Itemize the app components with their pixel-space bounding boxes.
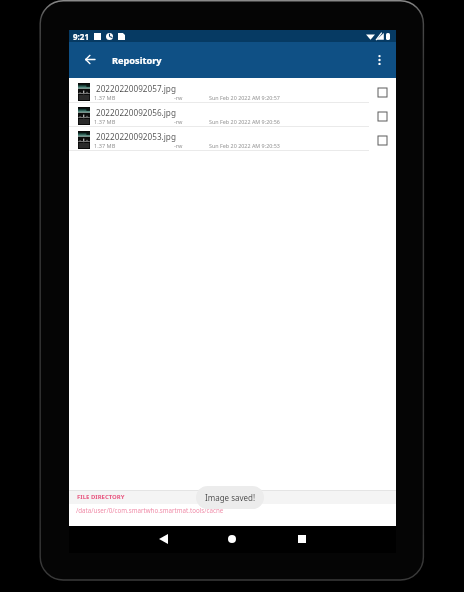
button[interactable]: 20220220092056.jpg (69, 102, 396, 126)
button[interactable]: Home (219, 526, 245, 552)
staticText: 1.37 MB (94, 118, 116, 126)
button[interactable]: Select file (373, 131, 391, 149)
button[interactable]: Recent apps (289, 526, 315, 552)
staticText: -rw (174, 118, 183, 126)
button[interactable]: 20220220092057.jpg (69, 78, 396, 102)
staticText: 20220220092057.jpg (96, 83, 176, 94)
staticText: 1.37 MB (94, 94, 116, 102)
button[interactable]: Back (76, 46, 103, 73)
staticText: 1.37 MB (94, 142, 116, 150)
button[interactable]: More options (366, 46, 393, 73)
staticText: 9:21 (73, 31, 89, 42)
button[interactable]: 20220220092053.jpg (69, 126, 396, 150)
staticText: Image saved! (205, 492, 256, 503)
button[interactable]: Select file (373, 83, 391, 101)
button[interactable]: Back (150, 526, 176, 552)
staticText: Sun Feb 20 2022 AM 9:20:53 (209, 142, 280, 149)
staticText: FILE DIRECTORY (77, 493, 125, 501)
staticText: Sun Feb 20 2022 AM 9:20:56 (209, 118, 280, 125)
staticText: -rw (174, 94, 183, 102)
staticText: 20220220092053.jpg (96, 131, 176, 142)
staticText: Repository (112, 54, 162, 67)
staticText: -rw (174, 142, 183, 150)
button[interactable]: Select file (373, 107, 391, 125)
staticText: /data/user/0/com.smartwho.smartmat.tools… (76, 506, 224, 514)
staticText: Sun Feb 20 2022 AM 9:20:57 (209, 94, 280, 101)
staticText: 20220220092056.jpg (96, 107, 176, 118)
